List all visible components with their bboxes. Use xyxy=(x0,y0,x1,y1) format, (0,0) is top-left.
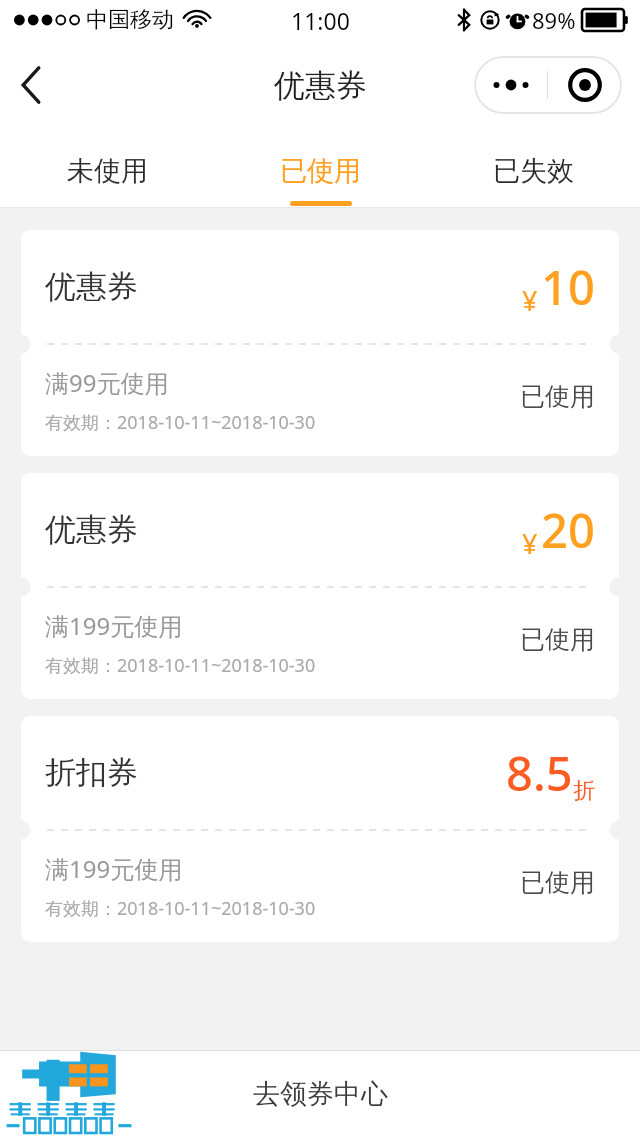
staticText: 去领券中心 xyxy=(253,1077,388,1111)
staticText: 10 xyxy=(541,255,595,319)
staticText: 满199元使用 xyxy=(45,852,183,885)
staticText: 未使用 xyxy=(67,154,148,188)
button[interactable]: 优惠券 xyxy=(21,230,619,456)
staticText: 已使用 xyxy=(520,381,595,412)
staticText: 折 xyxy=(573,777,595,805)
staticText: 已使用 xyxy=(520,867,595,898)
button[interactable]: 优惠券 xyxy=(21,473,619,699)
staticText: ¥ xyxy=(522,282,538,319)
button[interactable]: 未使用 xyxy=(0,130,214,207)
staticText: 满199元使用 xyxy=(45,609,183,642)
staticText: 已使用 xyxy=(280,154,361,188)
button[interactable]: More xyxy=(474,56,547,114)
staticText: 有效期：2018-10-11~2018-10-30 xyxy=(45,410,316,435)
staticText: 20 xyxy=(541,498,595,562)
button[interactable]: 已失效 xyxy=(427,130,640,207)
staticText: 11:00 xyxy=(291,5,350,36)
staticText: 优惠券 xyxy=(274,66,367,105)
staticText: 89% xyxy=(532,5,576,35)
staticText: ¥ xyxy=(522,525,538,562)
staticText: 有效期：2018-10-11~2018-10-30 xyxy=(45,653,316,678)
staticText: 折扣券 xyxy=(45,753,138,792)
staticText: 已使用 xyxy=(520,624,595,655)
button[interactable]: Back xyxy=(0,53,64,117)
button[interactable]: 去领券中心 xyxy=(0,1051,640,1136)
staticText: 优惠券 xyxy=(45,510,138,549)
button[interactable]: 已使用 xyxy=(214,130,427,207)
staticText: 已失效 xyxy=(493,154,574,188)
staticText: 优惠券 xyxy=(45,267,138,306)
staticText: 中国移动 xyxy=(86,6,174,34)
staticText: 满99元使用 xyxy=(45,366,169,399)
staticText: 有效期：2018-10-11~2018-10-30 xyxy=(45,896,316,921)
button[interactable]: Close xyxy=(548,56,622,114)
staticText: 8.5 xyxy=(506,741,573,805)
button[interactable]: 折扣券 xyxy=(21,716,619,942)
